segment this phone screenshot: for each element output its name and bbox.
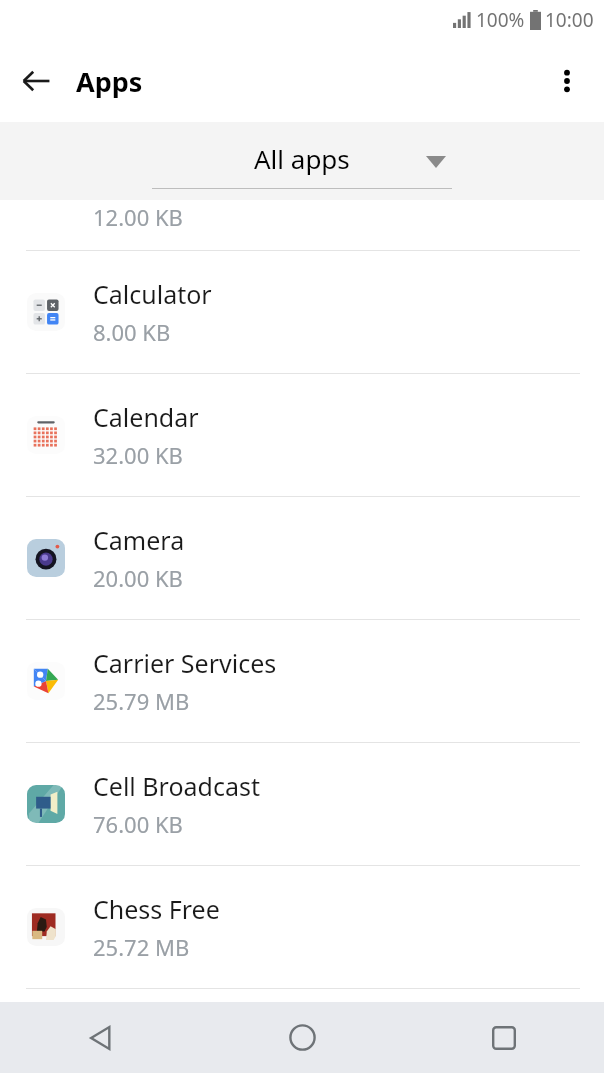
staticText: Carrier Services <box>93 646 277 680</box>
staticText: Calendar <box>93 400 199 434</box>
button[interactable]: Calendar <box>0 374 604 496</box>
staticText: 12.00 KB <box>93 202 183 232</box>
staticText: 8.00 KB <box>93 317 171 347</box>
button[interactable]: Home <box>202 1002 403 1073</box>
staticText: Apps <box>76 63 143 100</box>
staticText: 76.00 KB <box>93 809 183 839</box>
button[interactable]: Cell Broadcast <box>0 743 604 865</box>
staticText: 20.00 KB <box>93 563 183 593</box>
button[interactable]: Carrier Services <box>0 620 604 742</box>
staticText: 32.00 KB <box>93 440 183 470</box>
button[interactable]: Chess Free <box>0 866 604 988</box>
staticText: Cell Broadcast <box>93 769 260 803</box>
button[interactable]: Recent apps <box>403 1002 604 1073</box>
staticText: 25.72 MB <box>93 932 190 962</box>
button[interactable]: Camera <box>0 497 604 619</box>
staticText: Calculator <box>93 277 212 311</box>
staticText: Camera <box>93 523 185 557</box>
staticText: 100% <box>476 7 525 33</box>
button[interactable]: Calculator <box>0 251 604 373</box>
button[interactable]: All apps <box>0 122 604 200</box>
staticText: 10:00 <box>545 7 594 33</box>
staticText: All apps <box>254 141 350 176</box>
button[interactable]: Back <box>10 55 62 107</box>
button[interactable]: More options <box>542 56 592 106</box>
button[interactable]: Back <box>0 1002 202 1073</box>
staticText: Chess Free <box>93 892 220 926</box>
staticText: 25.79 MB <box>93 686 190 716</box>
